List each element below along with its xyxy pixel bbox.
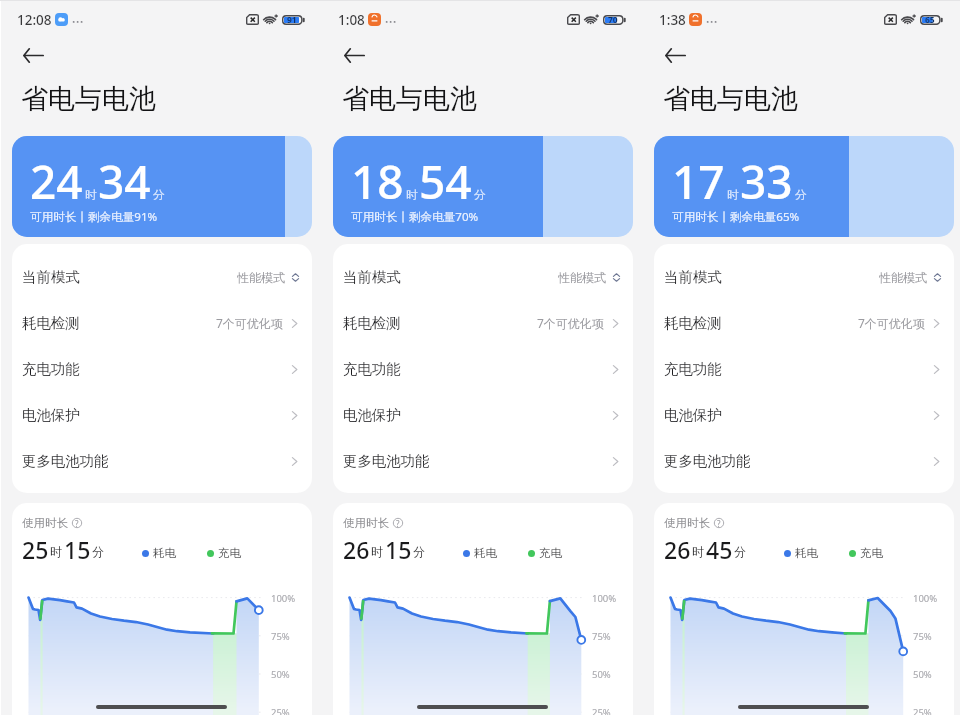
button[interactable]: 更多电池功能 (333, 438, 633, 484)
staticText: 时 (727, 188, 739, 202)
button[interactable]: 当前模式 (654, 254, 954, 300)
staticText: 15 (64, 534, 91, 565)
staticText: 电池保护 (22, 406, 80, 424)
staticText: 当前模式 (22, 268, 80, 286)
staticText: 12:08 (17, 11, 52, 29)
staticText: 25% (913, 706, 932, 715)
staticText: 45 (706, 534, 733, 565)
staticText: 性能模式 (237, 270, 285, 285)
staticText: ? (396, 518, 400, 528)
staticText: 当前模式 (343, 268, 401, 286)
staticText: 耗电 (795, 546, 818, 560)
staticText: 可用时长丨剩余电量70% (351, 209, 479, 225)
staticText: 50% (592, 668, 611, 681)
staticText: 25% (592, 706, 611, 715)
staticText: 充电功能 (664, 360, 722, 378)
staticText: 更多电池功能 (664, 452, 751, 470)
staticText: 耗电检测 (664, 314, 722, 332)
staticText: 17 (672, 150, 725, 213)
button[interactable]: 当前模式 (333, 254, 633, 300)
staticText: 65 (925, 14, 935, 26)
staticText: 分 (474, 188, 486, 202)
button[interactable]: Back (337, 38, 371, 72)
staticText: 耗电检测 (343, 314, 401, 332)
staticText: 1:08 (338, 11, 365, 29)
button[interactable]: 电池保护 (333, 392, 633, 438)
staticText: 25 (22, 534, 49, 565)
staticText: 分 (413, 544, 425, 559)
button[interactable]: 当前模式 (12, 254, 312, 300)
staticText: 可用时长丨剩余电量91% (30, 209, 158, 225)
staticText: 时 (692, 544, 704, 559)
staticText: 分 (795, 188, 807, 202)
button[interactable]: 更多电池功能 (654, 438, 954, 484)
button[interactable]: 更多电池功能 (12, 438, 312, 484)
staticText: 54 (419, 150, 472, 213)
staticText: 分 (734, 544, 746, 559)
staticText: 100% (913, 592, 938, 605)
staticText: 可用时长丨剩余电量65% (672, 209, 800, 225)
staticText: 时 (85, 188, 97, 202)
button[interactable]: 充电功能 (12, 346, 312, 392)
staticText: 充电 (539, 546, 562, 560)
staticText: 使用时长 (343, 516, 389, 530)
staticText: 充电功能 (343, 360, 401, 378)
staticText: ? (75, 518, 79, 528)
staticText: 时 (406, 188, 418, 202)
staticText: 更多电池功能 (343, 452, 430, 470)
staticText: 75% (271, 630, 290, 643)
staticText: 使用时长 (22, 516, 68, 530)
staticText: 充电 (218, 546, 241, 560)
staticText: 7个可优化项 (216, 315, 283, 331)
staticText: 电池保护 (664, 406, 722, 424)
staticText: 24 (30, 150, 83, 213)
staticText: 充电 (860, 546, 883, 560)
staticText: 时 (371, 544, 383, 559)
staticText: 50% (913, 668, 932, 681)
staticText: 更多电池功能 (22, 452, 109, 470)
staticText: 使用时长 (664, 516, 710, 530)
staticText: 75% (592, 630, 611, 643)
staticText: 省电与电池 (663, 82, 798, 116)
staticText: 7个可优化项 (858, 315, 925, 331)
staticText: 耗电 (153, 546, 176, 560)
staticText: 26 (343, 534, 370, 565)
staticText: 34 (98, 150, 151, 213)
button[interactable]: 24 (12, 136, 312, 237)
button[interactable]: 耗电检测 (333, 300, 633, 346)
staticText: 电池保护 (343, 406, 401, 424)
staticText: 耗电检测 (22, 314, 80, 332)
button[interactable]: 17 (654, 136, 954, 237)
staticText: 7个可优化项 (537, 315, 604, 331)
staticText: 50% (271, 668, 290, 681)
staticText: 26 (664, 534, 691, 565)
staticText: 18 (351, 150, 404, 213)
staticText: 充电功能 (22, 360, 80, 378)
button[interactable]: 充电功能 (654, 346, 954, 392)
button[interactable]: 电池保护 (654, 392, 954, 438)
staticText: 70 (608, 14, 618, 26)
staticText: 100% (271, 592, 296, 605)
staticText: 耗电 (474, 546, 497, 560)
button[interactable]: 耗电检测 (654, 300, 954, 346)
staticText: 省电与电池 (342, 82, 477, 116)
button[interactable]: 电池保护 (12, 392, 312, 438)
button[interactable]: 充电功能 (333, 346, 633, 392)
staticText: ? (717, 518, 721, 528)
staticText: 91 (287, 14, 297, 26)
button[interactable]: Back (658, 38, 692, 72)
staticText: 33 (740, 150, 793, 213)
staticText: 100% (592, 592, 617, 605)
staticText: 25% (271, 706, 290, 715)
button[interactable]: 耗电检测 (12, 300, 312, 346)
staticText: 15 (385, 534, 412, 565)
staticText: 当前模式 (664, 268, 722, 286)
staticText: 1:38 (659, 11, 686, 29)
staticText: 分 (153, 188, 165, 202)
staticText: 75% (913, 630, 932, 643)
staticText: 省电与电池 (21, 82, 156, 116)
button[interactable]: Back (16, 38, 50, 72)
button[interactable]: 18 (333, 136, 633, 237)
staticText: 时 (50, 544, 62, 559)
staticText: 性能模式 (558, 270, 606, 285)
